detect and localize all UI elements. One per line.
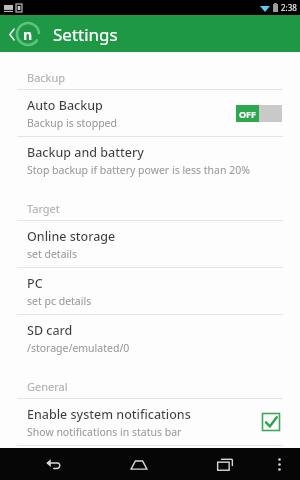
staticText: Backup: [27, 70, 66, 85]
staticText: Show notifications in status bar: [27, 425, 182, 439]
button[interactable]: Navigate up: [5, 18, 45, 50]
button[interactable]: Auto Backup toggle, off: [236, 105, 282, 122]
button[interactable]: Home: [122, 451, 156, 477]
staticText: Backup and battery: [27, 144, 144, 161]
button[interactable]: SD card: [0, 315, 300, 361]
staticText: Stop backup if battery power is less tha…: [27, 163, 250, 177]
staticText: Auto Backup: [27, 97, 103, 114]
staticText: Target: [27, 201, 60, 216]
staticText: set pc details: [27, 294, 92, 308]
staticText: /storage/emulated/0: [27, 341, 130, 355]
button[interactable]: Recent apps: [208, 451, 242, 477]
staticText: OFF: [239, 108, 257, 120]
staticText: General: [27, 379, 68, 394]
button[interactable]: Back: [36, 451, 70, 477]
button[interactable]: Backup and battery: [0, 137, 300, 183]
button[interactable]: Enable system notifications: [0, 399, 300, 445]
staticText: set details: [27, 247, 77, 261]
staticText: Settings: [53, 23, 118, 46]
button[interactable]: PC: [0, 268, 300, 314]
button[interactable]: More options: [268, 451, 290, 477]
staticText: n: [23, 25, 33, 44]
button[interactable]: Online storage: [0, 221, 300, 267]
staticText: Backup is stopped: [27, 116, 117, 130]
button[interactable]: Auto Backup: [0, 90, 300, 136]
staticText: SD card: [27, 322, 73, 339]
staticText: PC: [27, 275, 43, 292]
staticText: 2:38: [281, 2, 297, 13]
staticText: Online storage: [27, 228, 116, 245]
staticText: Enable system notifications: [27, 406, 191, 423]
button[interactable]: Enable system notifications checkbox, ch…: [260, 411, 282, 433]
